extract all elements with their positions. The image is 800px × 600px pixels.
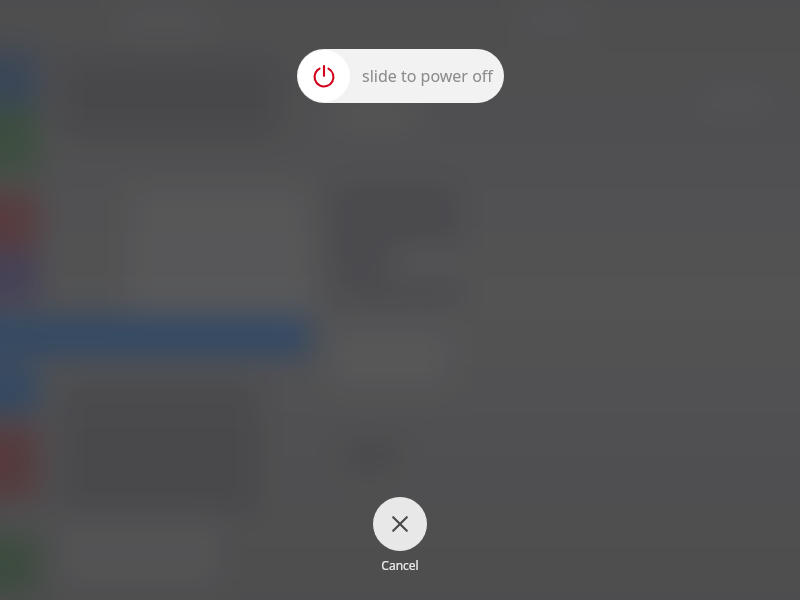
- button[interactable]: Cancel: [373, 497, 427, 551]
- button[interactable]: slide to power off: [297, 49, 504, 103]
- staticText: slide to power off: [362, 65, 493, 87]
- other: Slide to power off: [298, 50, 350, 102]
- staticText: Cancel: [381, 557, 419, 573]
